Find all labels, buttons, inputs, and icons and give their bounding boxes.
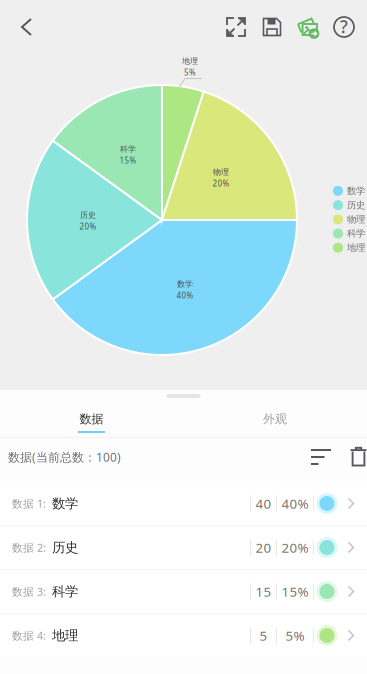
staticText: ? (340, 15, 348, 38)
staticText: 15% (119, 155, 136, 166)
button[interactable]: 数据 (0, 390, 183, 437)
staticText: 数据 3: (12, 584, 46, 599)
button[interactable]: 删除 (341, 440, 367, 474)
staticText: 40% (281, 495, 308, 512)
staticText: 15% (281, 583, 308, 600)
staticText: 历史 (347, 199, 365, 211)
staticText: 40% (176, 290, 193, 301)
staticText: 科学 (347, 228, 365, 239)
staticText: 地理 (347, 242, 365, 253)
staticText: 数据 2: (12, 540, 46, 555)
staticText: 数据(当前总数：100) (8, 449, 121, 465)
staticText: 数学 (52, 495, 78, 512)
staticText: 外观 (263, 412, 287, 426)
staticText: 数学 (347, 185, 365, 197)
button[interactable]: 数据 4: (0, 614, 367, 657)
staticText: 历史 (80, 210, 96, 220)
staticText: 物理 (347, 214, 365, 225)
staticText: 地理 (182, 56, 198, 66)
staticText: 5% (184, 67, 196, 78)
staticText: 5 (259, 627, 267, 644)
staticText: 地理 (52, 627, 78, 644)
staticText: 40 (255, 495, 271, 512)
staticText: 20% (79, 221, 96, 232)
staticText: 科学 (120, 144, 136, 154)
button[interactable]: 数据 1: (0, 482, 367, 525)
staticText: 20% (212, 178, 229, 189)
button[interactable]: 全屏 (218, 5, 254, 49)
button[interactable]: 导出图片 (290, 5, 326, 49)
staticText: 科学 (52, 583, 78, 600)
button[interactable]: 返回 (5, 5, 49, 49)
staticText: 数学 (177, 279, 193, 289)
staticText: 数据 (79, 412, 103, 426)
button[interactable]: 保存 (254, 5, 290, 49)
staticText: 20% (281, 539, 308, 556)
staticText: 20 (255, 539, 271, 556)
button[interactable]: 数据 3: (0, 570, 367, 613)
staticText: 5% (285, 627, 304, 644)
button[interactable]: 外观 (183, 390, 367, 437)
staticText: 15 (255, 583, 271, 600)
staticText: 物理 (213, 167, 229, 177)
staticText: 数据 1: (12, 496, 46, 511)
button[interactable]: 排序 (301, 440, 341, 474)
staticText: 历史 (52, 539, 78, 556)
button[interactable]: 数据 2: (0, 526, 367, 569)
button[interactable]: 帮助 (326, 5, 362, 49)
staticText: 数据 4: (12, 628, 46, 643)
